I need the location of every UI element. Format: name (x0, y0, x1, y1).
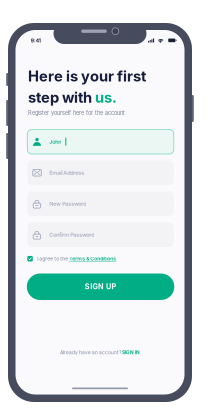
button[interactable]: John (27, 129, 174, 154)
button[interactable]: Confirm Password (27, 222, 174, 247)
staticText: New Password (49, 200, 86, 207)
button[interactable]: Email Address (27, 160, 174, 185)
staticText: us. (95, 89, 117, 106)
staticText: SIGN IN (122, 350, 140, 355)
button[interactable]: SIGN UP (27, 273, 174, 300)
staticText: SIGN UP (85, 282, 116, 291)
staticText: Here is your first (28, 67, 146, 85)
staticText: Register yourself here for the account (28, 110, 125, 116)
staticText: step with (28, 89, 95, 106)
staticText: Already have an account? (60, 350, 122, 355)
button[interactable]: I agree to the (27, 254, 174, 263)
button[interactable]: New Password (27, 191, 174, 216)
staticText: Terms & Conditions (69, 256, 116, 262)
staticText: I agree to the (37, 256, 69, 262)
staticText: Confirm Password (49, 231, 94, 238)
staticText: 9:41 (31, 38, 41, 44)
button[interactable]: Already have an account? (15, 347, 184, 357)
staticText: John (49, 138, 61, 145)
staticText: Email Address (49, 169, 84, 176)
